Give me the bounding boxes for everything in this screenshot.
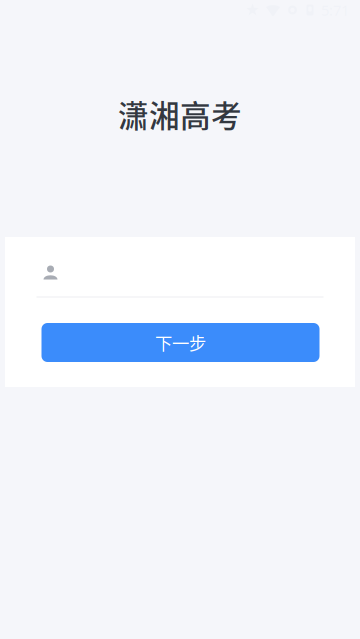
- button[interactable]: 下一步: [41, 323, 319, 362]
- staticText: 潇湘高考: [118, 92, 242, 136]
- staticText: 下一步: [155, 330, 206, 355]
